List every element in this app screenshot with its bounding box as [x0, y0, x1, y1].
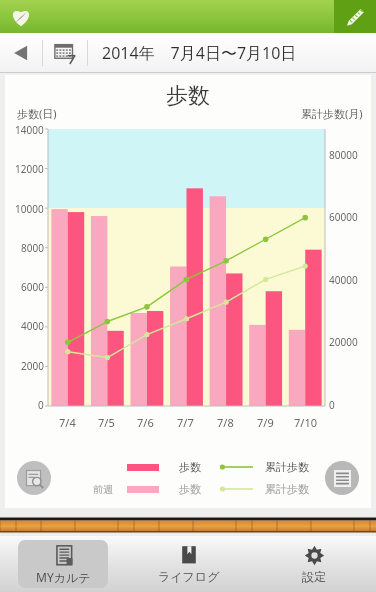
button[interactable]: Edit: [334, 0, 376, 33]
staticText: 歩数: [179, 482, 201, 496]
staticText: 8000: [21, 241, 44, 255]
staticText: 7/10: [294, 415, 317, 430]
button[interactable]: Select date: [43, 33, 87, 73]
staticText: ライフログ: [158, 569, 220, 584]
button[interactable]: Menu: [325, 461, 359, 495]
staticText: 7/9: [257, 415, 274, 430]
staticText: 20000: [329, 335, 358, 349]
button[interactable]: ライフログ: [144, 540, 233, 588]
staticText: 80000: [329, 148, 358, 162]
staticText: 累計歩数(月): [301, 106, 363, 121]
staticText: 7/4: [59, 415, 76, 430]
staticText: 14000: [15, 123, 44, 137]
staticText: 40000: [329, 273, 358, 287]
staticText: 2014年 7月4日〜7月10日: [102, 42, 297, 64]
button[interactable]: Report: [17, 461, 51, 495]
staticText: 60000: [329, 210, 358, 224]
staticText: 歩数: [179, 460, 201, 474]
staticText: 累計歩数: [265, 482, 309, 496]
staticText: MYカルテ: [36, 569, 91, 585]
staticText: 累計歩数: [265, 460, 309, 474]
staticText: 設定: [302, 569, 326, 584]
staticText: 0: [329, 398, 335, 412]
staticText: 前週: [93, 483, 113, 496]
staticText: 7/5: [98, 415, 115, 430]
staticText: 歩数: [166, 82, 210, 110]
staticText: 2000: [21, 359, 44, 373]
staticText: 4000: [21, 319, 44, 333]
staticText: 歩数(日): [17, 106, 57, 121]
staticText: 7/8: [217, 415, 234, 430]
staticText: 6000: [21, 280, 44, 294]
staticText: 12000: [15, 162, 44, 176]
button[interactable]: App logo: [8, 4, 34, 30]
button[interactable]: 設定: [269, 540, 358, 588]
staticText: 7/6: [137, 415, 154, 430]
staticText: 0: [38, 398, 44, 412]
staticText: 10000: [15, 202, 44, 216]
staticText: 7/7: [177, 415, 194, 430]
button[interactable]: Previous week: [0, 33, 42, 73]
button[interactable]: MYカルテ: [18, 540, 108, 588]
